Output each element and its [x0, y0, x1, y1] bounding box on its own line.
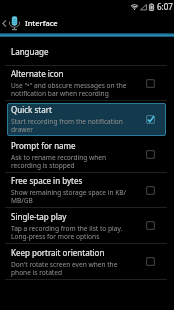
button[interactable]: Alternate icon: [0, 66, 174, 100]
staticText: Keep portrait orientation: [11, 247, 105, 258]
staticText: Free space in bytes: [11, 175, 83, 186]
button[interactable]: Single-tap play: [0, 208, 174, 243]
button[interactable]: Free space in bytes: [0, 173, 174, 207]
staticText: Use "•" and obscure messages on the noti…: [11, 81, 129, 98]
staticText: Tap a recording from the list to play. L…: [11, 224, 129, 241]
staticText: Language: [11, 46, 49, 57]
staticText: Prompt for name: [11, 140, 76, 151]
staticText: Ask to rename recording when recording i…: [11, 153, 129, 170]
button[interactable]: Navigate up: [0, 13, 174, 33]
staticText: 6:07: [157, 1, 173, 12]
staticText: Start recording from the notification dr…: [11, 117, 129, 134]
button[interactable]: Prompt for name: [0, 137, 174, 172]
staticText: Alternate icon: [11, 68, 64, 79]
staticText: Show remaining storage space in KB/MB/GB: [11, 188, 129, 205]
staticText: Single-tap play: [11, 211, 67, 222]
staticText: Interface: [25, 18, 58, 28]
button[interactable]: Quick start: [0, 101, 174, 137]
other: Navigate up: [1, 19, 7, 28]
staticText: Don't rotate screen even when the phone …: [11, 260, 129, 277]
button[interactable]: Keep portrait orientation: [0, 244, 174, 279]
staticText: Quick start: [11, 104, 52, 115]
